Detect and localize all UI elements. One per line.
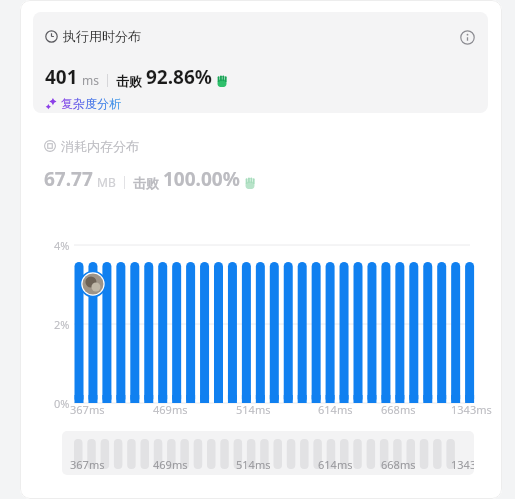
staticText: 401 (45, 64, 78, 90)
staticText: 469ms (153, 457, 188, 472)
staticText: 92.86% (146, 64, 212, 90)
staticText: 1343ms (451, 457, 474, 472)
staticText: 2% (54, 317, 70, 332)
button[interactable]: Info (456, 26, 478, 48)
staticText: 67.77 (44, 166, 93, 192)
staticText: 614ms (318, 457, 353, 472)
staticText: 击败 (133, 175, 159, 191)
staticText: 614ms (318, 402, 353, 417)
staticText: 1343ms (451, 402, 492, 417)
staticText: ms (82, 72, 99, 88)
staticText: 668ms (381, 457, 416, 472)
staticText: 367ms (70, 402, 105, 417)
staticText: 668ms (381, 402, 416, 417)
staticText: 100.00% (163, 166, 240, 192)
staticText: 击败 (116, 73, 142, 89)
staticText: 消耗内存分布 (61, 138, 139, 154)
button[interactable]: 复杂度分析 (45, 96, 121, 111)
staticText: 469ms (153, 402, 188, 417)
staticText: 0% (54, 396, 70, 411)
staticText: 367ms (70, 457, 105, 472)
button[interactable]: 367ms (62, 431, 474, 475)
staticText: 514ms (236, 457, 271, 472)
staticText: 514ms (236, 402, 271, 417)
staticText: 复杂度分析 (61, 96, 121, 111)
staticText: MB (97, 174, 116, 190)
staticText: 执行用时分布 (63, 28, 141, 44)
button[interactable]: 执行用时分布 (33, 12, 488, 113)
staticText: 4% (54, 238, 70, 253)
